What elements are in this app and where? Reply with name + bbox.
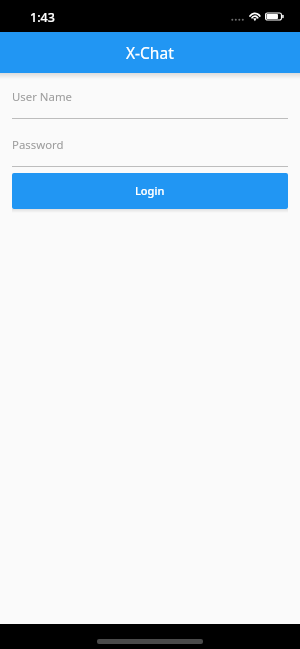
staticText: Login <box>135 183 165 198</box>
button[interactable]: User Name <box>12 89 288 119</box>
other: Cellular signal <box>230 17 244 23</box>
staticText: X-Chat <box>126 42 174 63</box>
button[interactable]: Password <box>12 137 288 167</box>
button[interactable]: Login <box>12 173 288 209</box>
other: Battery <box>265 12 285 21</box>
staticText: User Name <box>12 89 72 105</box>
button[interactable]: Home <box>97 639 203 644</box>
other: Wi-Fi <box>248 11 262 22</box>
staticText: Password <box>12 137 64 153</box>
staticText: 1:43 <box>30 9 55 26</box>
